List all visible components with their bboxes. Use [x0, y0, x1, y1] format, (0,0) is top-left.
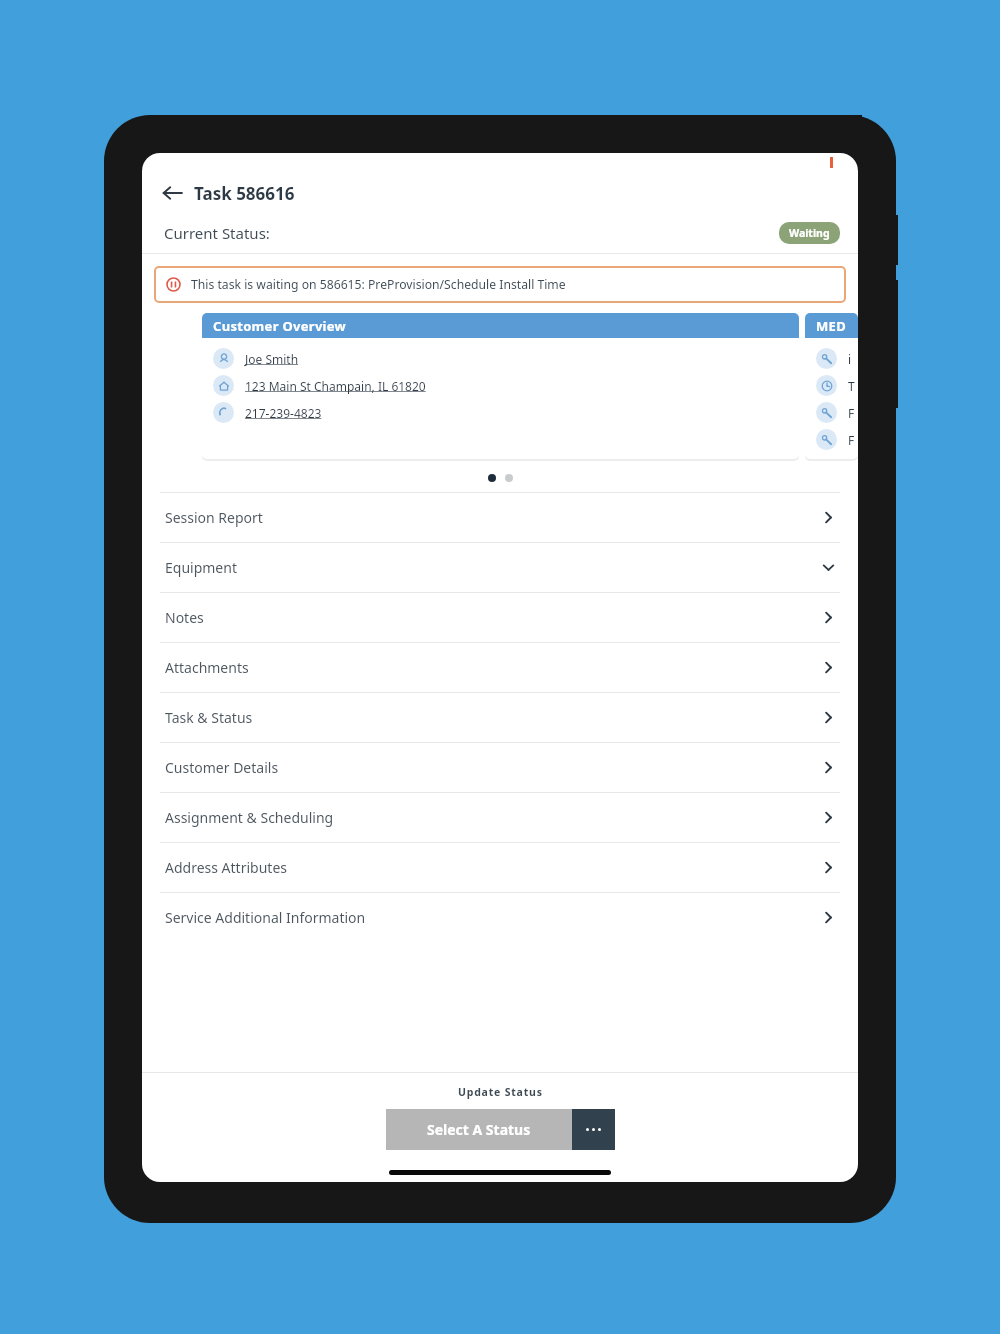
button[interactable]: Select A Status: [386, 1109, 572, 1150]
staticText: Customer Details: [165, 758, 279, 777]
button[interactable]: MED: [805, 313, 858, 459]
button[interactable]: Service Additional Information: [142, 893, 858, 942]
staticText: Session Report: [165, 508, 263, 527]
button[interactable]: Equipment: [142, 543, 858, 593]
staticText: Update Status: [458, 1085, 543, 1099]
staticText: Waiting: [789, 226, 830, 240]
staticText: 217-239-4823: [245, 405, 322, 421]
button[interactable]: Assignment & Scheduling: [142, 793, 858, 843]
staticText: Select A Status: [427, 1120, 531, 1139]
button[interactable]: Customer Details: [142, 743, 858, 793]
staticText: This task is waiting on 586615: PreProvi…: [191, 276, 566, 293]
staticText: Service Additional Information: [165, 908, 366, 927]
staticText: TBD: [848, 378, 858, 394]
button[interactable]: More status options: [572, 1109, 615, 1150]
staticText: Task 586616: [194, 182, 295, 205]
button[interactable]: This task is waiting on 586615: PreProvi…: [154, 266, 846, 303]
staticText: 123 Main St Champain, IL 61820: [245, 378, 426, 394]
staticText: Notes: [165, 608, 204, 627]
button[interactable]: Back: [154, 175, 190, 211]
button[interactable]: Address Attributes: [142, 843, 858, 893]
button[interactable]: Waiting: [779, 222, 840, 244]
staticText: Joe Smith: [245, 351, 299, 367]
staticText: Customer Overview: [213, 317, 347, 335]
staticText: FTTP: [848, 405, 858, 421]
staticText: Equipment: [165, 558, 237, 577]
staticText: Address Attributes: [165, 858, 287, 877]
button[interactable]: Notes: [142, 593, 858, 643]
staticText: Current Status:: [164, 223, 270, 243]
staticText: Assignment & Scheduling: [165, 808, 334, 827]
staticText: MED: [816, 317, 846, 335]
button[interactable]: Attachments: [142, 643, 858, 693]
staticText: Attachments: [165, 658, 249, 677]
button[interactable]: Task & Status: [142, 693, 858, 743]
staticText: FTTP: [848, 432, 858, 448]
staticText: inet: [848, 351, 858, 367]
staticText: Task & Status: [165, 708, 253, 727]
button[interactable]: Customer Overview: [202, 313, 799, 459]
button[interactable]: Session Report: [142, 493, 858, 543]
